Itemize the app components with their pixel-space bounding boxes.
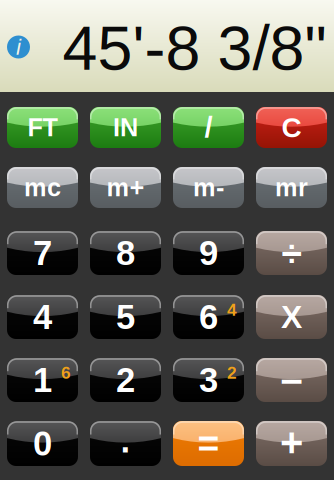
staticText: 4	[33, 298, 52, 336]
button[interactable]: IN	[90, 107, 161, 148]
staticText: 5	[116, 298, 135, 336]
staticText: 0	[33, 424, 52, 463]
staticText: i	[16, 34, 21, 60]
staticText: m-	[193, 173, 224, 202]
staticText: 2	[227, 363, 237, 382]
button[interactable]: 0	[7, 421, 78, 466]
staticText: 6	[61, 363, 71, 382]
button[interactable]: 8	[90, 231, 161, 275]
staticText: mr	[275, 173, 308, 202]
button[interactable]: +	[256, 421, 327, 466]
button[interactable]: .	[90, 421, 161, 466]
staticText: X	[281, 299, 302, 335]
button[interactable]: mc	[7, 167, 78, 208]
staticText: .	[120, 421, 130, 460]
staticText: 8	[116, 234, 135, 272]
staticText: 1	[33, 361, 52, 399]
button[interactable]: 2	[90, 358, 161, 402]
staticText: FT	[27, 113, 57, 142]
staticText: IN	[113, 113, 138, 142]
staticText: 7	[33, 234, 52, 272]
staticText: 45'-8 3/8"	[62, 13, 326, 83]
button[interactable]: FT	[7, 107, 78, 148]
staticText: 3	[199, 361, 218, 399]
button[interactable]: /	[173, 107, 244, 148]
staticText: C	[281, 112, 301, 143]
button[interactable]: –	[256, 358, 327, 402]
button[interactable]: mr	[256, 167, 327, 208]
button[interactable]: 9	[173, 231, 244, 275]
staticText: 2	[116, 361, 135, 399]
staticText: +	[280, 420, 303, 465]
button[interactable]: 6	[173, 295, 244, 339]
staticText: 6	[199, 298, 218, 336]
button[interactable]: m-	[173, 167, 244, 208]
button[interactable]: m+	[90, 167, 161, 208]
button[interactable]: 7	[7, 231, 78, 275]
button[interactable]: 3	[173, 358, 244, 402]
staticText: –	[280, 357, 302, 401]
staticText: mc	[24, 173, 61, 202]
button[interactable]: =	[173, 421, 244, 466]
staticText: 4	[227, 300, 237, 319]
button[interactable]: 1	[7, 358, 78, 402]
staticText: =	[197, 423, 219, 464]
button[interactable]: ÷	[256, 231, 327, 275]
staticText: m+	[106, 173, 144, 202]
button[interactable]: 5	[90, 295, 161, 339]
button[interactable]: X	[256, 295, 327, 339]
button[interactable]: Info	[7, 35, 30, 58]
button[interactable]: 4	[7, 295, 78, 339]
staticText: 9	[199, 234, 218, 272]
staticText: /	[204, 111, 212, 144]
staticText: ÷	[281, 232, 301, 274]
button[interactable]: C	[256, 107, 327, 148]
